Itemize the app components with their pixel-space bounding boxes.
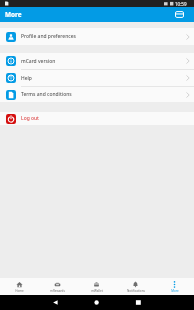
staticText: mWallet — [91, 289, 103, 293]
button[interactable]: More — [155, 278, 194, 295]
button[interactable]: mRewards — [38, 278, 77, 295]
staticText: More — [5, 10, 22, 19]
staticText: More — [171, 289, 179, 293]
staticText: mRewards — [50, 289, 65, 293]
button[interactable]: Home — [0, 278, 38, 295]
staticText: Home — [15, 289, 24, 293]
staticText: mCard version — [21, 58, 56, 65]
button[interactable]: Help — [0, 70, 194, 86]
button[interactable]: mWallet — [77, 278, 116, 295]
staticText: Terms and conditions — [21, 91, 72, 98]
staticText: Profile and preferences — [21, 33, 76, 40]
staticText: Log out — [21, 115, 40, 122]
button[interactable]: My cards — [173, 8, 186, 21]
staticText: Notifications — [127, 289, 145, 293]
button[interactable]: Log out — [0, 112, 194, 125]
button[interactable]: Terms and conditions — [0, 87, 194, 102]
button[interactable]: mCard version — [0, 53, 194, 69]
button[interactable]: Profile and preferences — [0, 28, 194, 45]
staticText: 10:59 — [175, 1, 187, 7]
button[interactable]: Notifications — [116, 278, 155, 295]
staticText: Help — [21, 75, 32, 82]
